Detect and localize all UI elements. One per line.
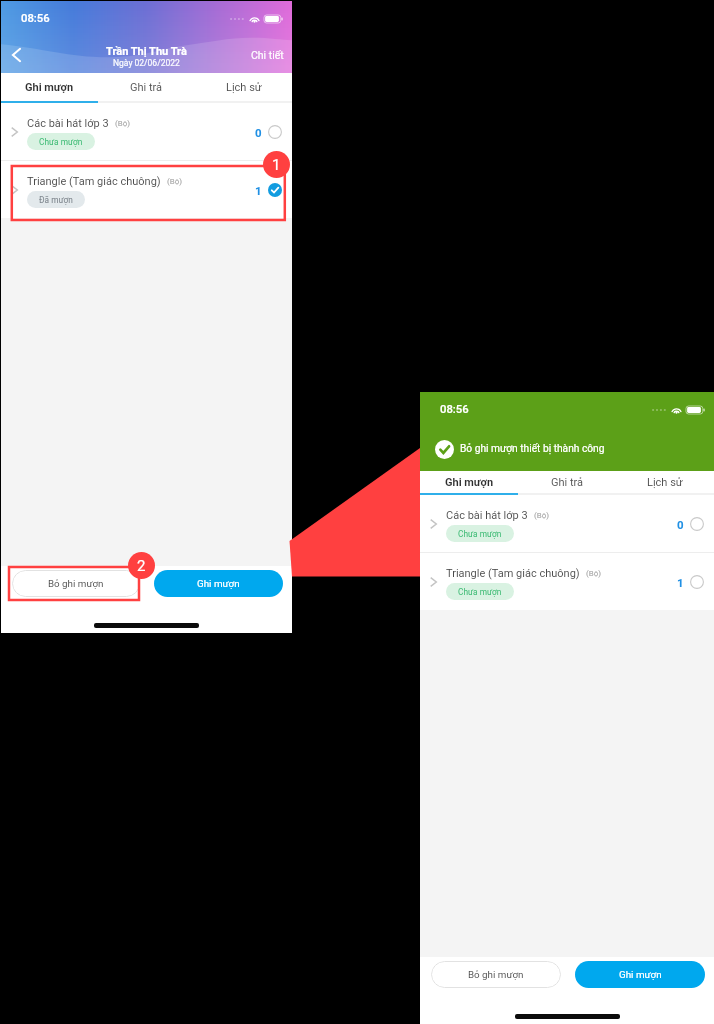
staticText: Chi tiết [251, 49, 284, 61]
staticText: 0 [255, 126, 262, 139]
staticText: 08:56 [440, 403, 469, 416]
button[interactable]: Triangle (Tam giác chuông) [420, 553, 714, 610]
staticText: Ghi mượn [197, 578, 240, 589]
staticText: 2 [137, 557, 146, 575]
staticText: Chưa mượn [458, 587, 502, 597]
staticText: Triangle (Tam giác chuông) [446, 567, 580, 580]
staticText: Bỏ ghi mượn [468, 969, 524, 980]
staticText: 08:56 [21, 12, 50, 25]
staticText: (Bộ) [586, 569, 602, 578]
staticText: Các bài hát lớp 3 [446, 509, 528, 522]
button[interactable]: Ghi mượn [575, 961, 705, 988]
button[interactable]: Ghi mượn [154, 570, 283, 597]
staticText: Ghi mượn [619, 969, 662, 980]
staticText: Ngày 02/06/2022 [113, 58, 180, 68]
staticText: Ghi mượn [445, 476, 494, 489]
staticText: (Bộ) [115, 119, 131, 128]
button[interactable]: Lịch sử [195, 73, 292, 101]
staticText: Lịch sử [647, 476, 683, 489]
button[interactable]: Ghi trả [518, 471, 616, 493]
staticText: 1 [255, 184, 262, 197]
staticText: Chưa mượn [458, 529, 502, 539]
staticText: Lịch sử [226, 81, 262, 94]
button[interactable]: Ghi mượn [1, 73, 98, 101]
staticText: Triangle (Tam giác chuông) [27, 175, 161, 188]
staticText: (Bộ) [534, 511, 550, 520]
staticText: 0 [677, 518, 684, 531]
button[interactable]: Triangle (Tam giác chuông) [1, 161, 292, 218]
button[interactable]: Ghi mượn [420, 471, 518, 493]
staticText: Trần Thị Thu Trà [106, 45, 187, 58]
button[interactable]: Bỏ ghi mượn [12, 570, 140, 597]
button[interactable]: Bỏ ghi mượn [431, 961, 561, 988]
staticText: Bỏ ghi mượn [48, 578, 104, 589]
staticText: (Bộ) [167, 177, 183, 186]
staticText: Đã mượn [39, 195, 73, 205]
staticText: Chưa mượn [39, 137, 83, 147]
button[interactable]: Back [12, 48, 21, 62]
staticText: Ghi trả [130, 81, 163, 94]
staticText: Ghi mượn [25, 81, 74, 94]
staticText: Ghi trả [551, 476, 584, 489]
button[interactable]: Các bài hát lớp 3 [420, 495, 714, 552]
button[interactable]: Ghi trả [98, 73, 195, 101]
staticText: Các bài hát lớp 3 [27, 117, 109, 130]
staticText: 1 [272, 156, 281, 174]
button[interactable]: Chi tiết [249, 45, 286, 65]
button[interactable]: Các bài hát lớp 3 [1, 103, 292, 160]
button[interactable]: Lịch sử [616, 471, 714, 493]
staticText: 1 [677, 576, 684, 589]
staticText: Bỏ ghi mượn thiết bị thành công [460, 443, 605, 455]
